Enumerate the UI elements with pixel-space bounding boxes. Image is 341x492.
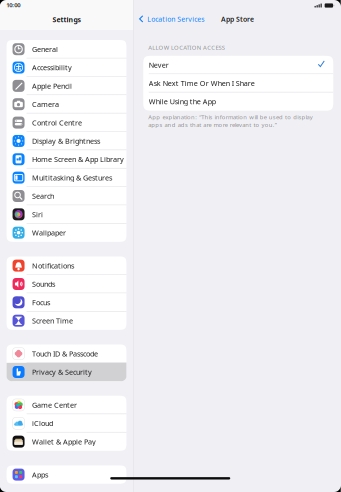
button[interactable]: Touch ID & Passcode	[6, 344, 126, 363]
staticText: While Using the App	[149, 97, 216, 106]
staticText: Never	[149, 60, 169, 70]
staticText: Settings	[52, 15, 80, 24]
staticText: Location Services	[147, 14, 204, 24]
button[interactable]: Sounds	[6, 275, 126, 293]
button[interactable]: Search	[6, 187, 126, 205]
button[interactable]: iCloud	[6, 414, 126, 432]
staticText: Privacy & Security	[32, 367, 92, 377]
button[interactable]: Game Center	[6, 396, 126, 414]
staticText: App Store	[221, 14, 254, 23]
button[interactable]: Notifications	[6, 256, 126, 275]
staticText: ALLOW LOCATION ACCESS	[148, 43, 225, 51]
staticText: Search	[32, 191, 54, 201]
staticText: Screen Time	[32, 316, 73, 325]
button[interactable]: Privacy & Security	[6, 363, 126, 381]
button[interactable]: Apps	[6, 465, 126, 484]
staticText: Camera	[32, 99, 59, 109]
button[interactable]: Apple Pencil	[6, 77, 126, 95]
button[interactable]: While Using the App	[143, 92, 333, 111]
staticText: Sounds	[32, 279, 55, 289]
button[interactable]: Accessibility	[6, 58, 126, 77]
button[interactable]: Never	[143, 56, 333, 74]
staticText: Apps	[32, 470, 48, 479]
staticText: Control Centre	[32, 118, 82, 127]
button[interactable]: Display & Brightness	[6, 132, 126, 150]
staticText: Accessibility	[32, 63, 72, 72]
staticText: Multitasking & Gestures	[32, 173, 112, 182]
staticText: Focus	[32, 297, 50, 307]
staticText: Siri	[32, 209, 43, 219]
button[interactable]: Ask Next Time Or When I Share	[143, 74, 333, 92]
button[interactable]: Control Centre	[6, 113, 126, 132]
staticText: Wallet & Apple Pay	[32, 437, 96, 446]
button[interactable]: Siri	[6, 205, 126, 223]
button[interactable]: Focus	[6, 293, 126, 311]
button[interactable]: Camera	[6, 95, 126, 113]
button[interactable]: Wallpaper	[6, 223, 126, 242]
staticText: 10:00	[6, 1, 20, 9]
staticText: App explanation: “This information will …	[148, 113, 313, 129]
button[interactable]: Multitasking & Gestures	[6, 168, 126, 187]
staticText: Ask Next Time Or When I Share	[149, 78, 255, 88]
staticText: General	[32, 44, 58, 54]
staticText: Apple Pencil	[32, 81, 72, 91]
button[interactable]: General	[6, 40, 126, 58]
staticText: Display & Brightness	[32, 136, 100, 146]
button[interactable]: Wallet & Apple Pay	[6, 432, 126, 451]
staticText: Wallpaper	[32, 228, 66, 237]
button[interactable]: Location Services	[134, 12, 208, 26]
staticText: Notifications	[32, 261, 74, 270]
button[interactable]: Screen Time	[6, 311, 126, 330]
staticText: iCloud	[32, 418, 53, 428]
staticText: Touch ID & Passcode	[32, 349, 98, 358]
staticText: Game Center	[32, 400, 77, 410]
button[interactable]: Home Screen & App Library	[6, 150, 126, 168]
staticText: Home Screen & App Library	[32, 154, 124, 164]
